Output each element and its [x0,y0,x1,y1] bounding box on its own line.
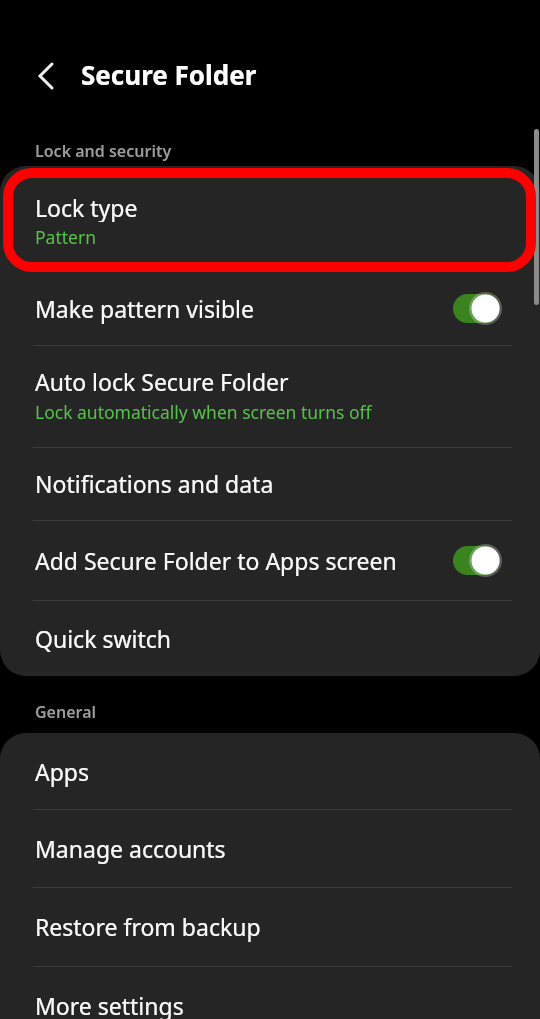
button[interactable]: Notifications and data [0,447,540,520]
button[interactable]: Manage accounts [0,809,540,887]
staticText: Restore from backup [35,911,261,942]
button[interactable]: Quick switch [0,600,540,676]
button[interactable]: Add Secure Folder to Apps screen [0,520,540,600]
staticText: Secure Folder [81,57,257,92]
staticText: General [35,701,97,723]
button[interactable]: Auto lock Secure Folder [0,345,540,447]
button[interactable]: Lock type [0,166,540,272]
staticText: Lock and security [35,140,172,162]
button[interactable]: Apps [0,733,540,809]
staticText: Notifications and data [35,468,274,499]
staticText: Add Secure Folder to Apps screen [35,545,397,576]
button[interactable]: More settings [0,966,540,1019]
staticText: Lock type [35,192,138,222]
staticText: Make pattern visible [35,293,254,324]
staticText: Auto lock Secure Folder [35,366,289,396]
button[interactable] [24,56,64,96]
staticText: Apps [35,756,90,787]
staticText: Lock automatically when screen turns off [35,400,372,424]
button[interactable]: Make pattern visible [0,272,540,345]
staticText: More settings [35,990,184,1019]
button[interactable]: Restore from backup [0,887,540,966]
staticText: Manage accounts [35,833,226,864]
staticText: Pattern [35,225,96,249]
staticText: Quick switch [35,623,171,654]
